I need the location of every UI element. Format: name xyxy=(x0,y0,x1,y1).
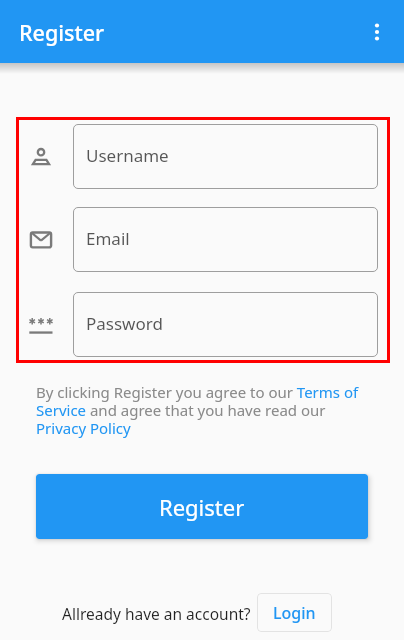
button[interactable]: Username xyxy=(73,124,378,189)
staticText: By clicking Register you agree to our Te… xyxy=(36,382,362,439)
button[interactable]: Terms of Service xyxy=(36,399,87,416)
staticText: Username xyxy=(86,144,169,167)
staticText: Email xyxy=(86,227,130,250)
button[interactable]: Terms of Service xyxy=(296,381,360,398)
staticText: Allready have an account? xyxy=(62,603,251,624)
button[interactable]: Password xyxy=(73,292,378,357)
staticText: Register xyxy=(19,18,105,47)
staticText: Login xyxy=(273,602,316,624)
button[interactable]: Register xyxy=(36,474,368,539)
staticText: Password xyxy=(86,312,163,335)
button[interactable]: More options xyxy=(355,10,399,54)
staticText: Register xyxy=(159,492,245,522)
button[interactable]: Email xyxy=(73,207,378,272)
button[interactable]: Login xyxy=(257,593,332,632)
button[interactable]: Privacy Policy xyxy=(36,417,132,434)
